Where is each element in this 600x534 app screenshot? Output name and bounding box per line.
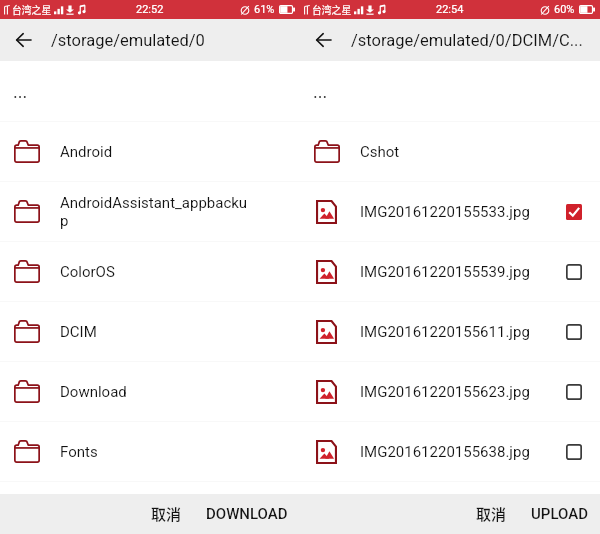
staticText: 取消 [151, 503, 182, 525]
button[interactable]: 取消 [464, 495, 517, 533]
staticText: 取消 [476, 503, 507, 525]
button[interactable]: Select [566, 324, 582, 340]
button[interactable]: Select [566, 264, 582, 280]
staticText: 22:52 [136, 3, 164, 16]
staticText: DOWNLOAD [206, 505, 288, 523]
button[interactable]: ... [0, 62, 300, 121]
staticText: ColorOS [60, 263, 254, 281]
staticText: 台湾之星 [312, 3, 352, 17]
staticText: IMG20161220155539.jpg [360, 263, 554, 281]
button[interactable]: DCIM [0, 302, 300, 361]
staticText: 60% [554, 3, 575, 16]
button[interactable]: ColorOS [0, 242, 300, 301]
staticText: IMG20161220155611.jpg [360, 323, 554, 341]
staticText: 61% [254, 3, 275, 16]
button[interactable]: Download [0, 362, 300, 421]
button[interactable]: IMG20161220155623.jpg [300, 362, 600, 421]
staticText: 台湾之星 [12, 3, 52, 17]
staticText: IMG20161220155623.jpg [360, 383, 554, 401]
button[interactable]: 取消 [139, 495, 192, 533]
button[interactable]: AndroidAssistant_appbackup [0, 182, 300, 241]
staticText: /storage/emulated/0 [51, 31, 205, 50]
staticText: 22:54 [436, 3, 464, 16]
button[interactable]: Android [0, 122, 300, 181]
staticText: IMG20161220155638.jpg [360, 443, 554, 461]
staticText: Android [60, 143, 254, 161]
button[interactable]: DOWNLOAD [192, 497, 300, 531]
button[interactable]: Select [566, 444, 582, 460]
staticText: ... [13, 81, 28, 102]
button[interactable]: IMG20161220155539.jpg [300, 242, 600, 301]
staticText: IMG20161220155533.jpg [360, 203, 554, 221]
staticText: ... [313, 81, 328, 102]
button[interactable]: IMG20161220155533.jpg [300, 182, 600, 241]
staticText: AndroidAssistant_appbackup [60, 194, 254, 230]
button[interactable]: Cshot [300, 122, 600, 181]
staticText: UPLOAD [531, 505, 588, 523]
staticText: Cshot [360, 143, 554, 161]
button[interactable]: Selected [566, 204, 582, 220]
button[interactable]: UPLOAD [517, 497, 600, 531]
staticText: Fonts [60, 443, 254, 461]
button[interactable]: IMG20161220155638.jpg [300, 422, 600, 481]
button[interactable]: Back [10, 27, 36, 53]
staticText: DCIM [60, 323, 254, 341]
button[interactable]: Fonts [0, 422, 300, 481]
button[interactable]: IMG20161220155611.jpg [300, 302, 600, 361]
staticText: Download [60, 383, 254, 401]
staticText: /storage/emulated/0/DCIM/C... [351, 31, 583, 50]
button[interactable]: Select [566, 384, 582, 400]
button[interactable]: ... [300, 62, 600, 121]
button[interactable]: Back [310, 27, 336, 53]
